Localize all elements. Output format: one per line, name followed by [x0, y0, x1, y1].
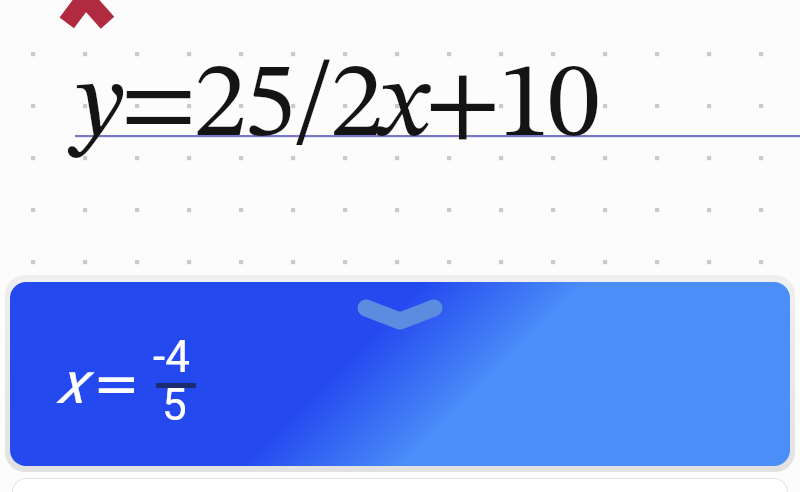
- button[interactable]: x: [10, 282, 790, 466]
- staticText: =: [93, 351, 140, 416]
- staticText: y=25/2x+10: [76, 53, 597, 160]
- staticText: 5: [162, 379, 187, 431]
- staticText: x: [58, 349, 86, 417]
- button[interactable]: [12, 478, 788, 492]
- staticText: -4: [153, 331, 190, 383]
